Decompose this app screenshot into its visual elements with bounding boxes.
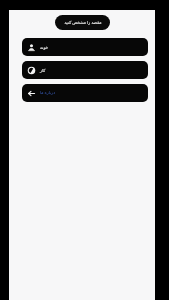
staticText: خونه (40, 45, 49, 50)
button[interactable]: مقصد را مشخص کنید (55, 15, 110, 30)
button[interactable]: Theme (22, 61, 148, 79)
other: Theme (27, 66, 36, 75)
staticText: درباره ما (40, 90, 56, 96)
staticText: کار (40, 68, 46, 73)
other: Account (27, 43, 36, 52)
other: Back (27, 89, 36, 98)
button[interactable]: Account (22, 38, 148, 56)
staticText: مقصد را مشخص کنید (64, 20, 102, 26)
button[interactable]: Back (22, 84, 148, 102)
